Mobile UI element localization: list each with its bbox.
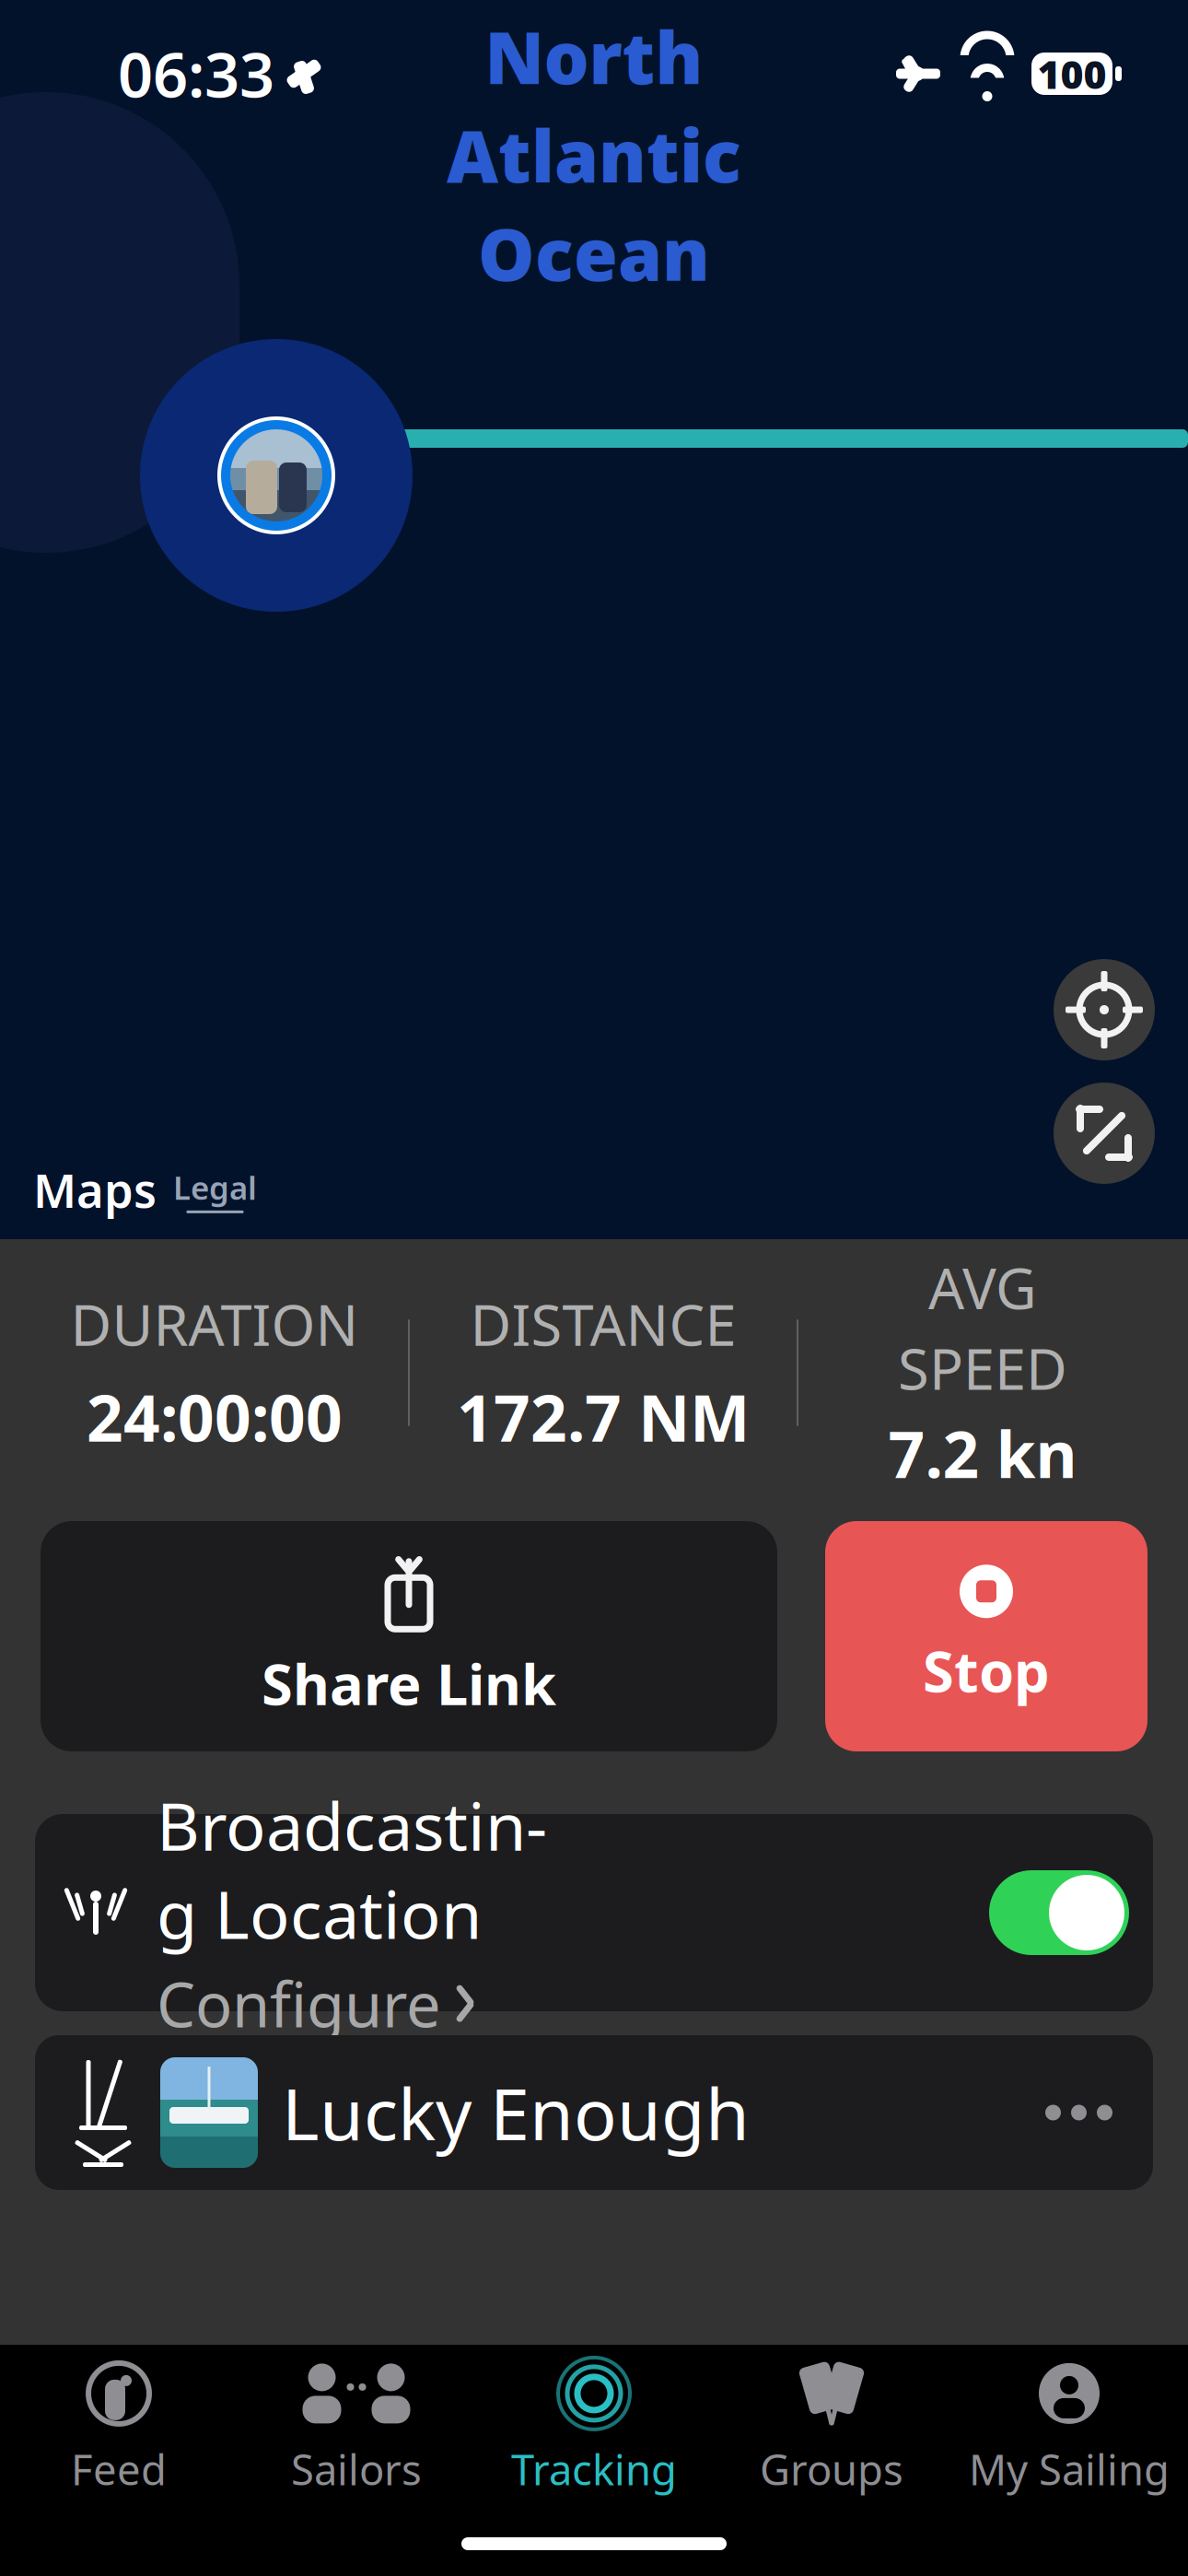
staticText: Configure [157,1963,441,2044]
staticText: Sailors [291,2441,422,2497]
staticText: Tracking [511,2441,677,2497]
staticText: Ocean [478,206,710,300]
staticText: 7.2 kn [888,1411,1077,1496]
button[interactable]: Groups [713,2345,950,2511]
button[interactable]: Broadcasting Location [35,1814,1153,2011]
button[interactable]: Feed [0,2345,238,2511]
staticText: SPEED [898,1330,1067,1405]
staticText: Feed [71,2441,167,2497]
button[interactable]: Sailors [238,2345,475,2511]
staticText: Broadcasting Location [157,1781,547,1957]
staticText: Groups [760,2441,903,2497]
staticText: Share Link [262,1646,556,1721]
button[interactable]: Center on location [1054,959,1155,1060]
staticText: 100 [1037,48,1106,100]
staticText: Stop [923,1633,1050,1708]
staticText: DISTANCE [470,1286,736,1361]
staticText: AVG [928,1250,1037,1325]
button[interactable]: Legal [173,1166,257,1213]
staticText: 172.7 NM [457,1374,750,1459]
button[interactable]: My Sailing [950,2345,1188,2511]
button[interactable]: Lucky Enough [35,2035,1153,2190]
staticText: My Sailing [969,2441,1170,2497]
button[interactable]: Share Link [41,1521,777,1751]
staticText: Legal [173,1166,257,1209]
staticText: North [485,9,703,104]
staticText: Lucky Enough [282,2065,750,2160]
button[interactable]: Stop [825,1521,1147,1751]
staticText: 24:00:00 [87,1374,343,1459]
staticText: 06:33 [118,33,274,114]
button[interactable]: Tracking [475,2345,713,2511]
staticText: DURATION [70,1286,359,1361]
staticText: Atlantic [447,108,741,202]
button[interactable]: Expand map [1054,1083,1155,1184]
staticText: Maps [33,1159,157,1221]
